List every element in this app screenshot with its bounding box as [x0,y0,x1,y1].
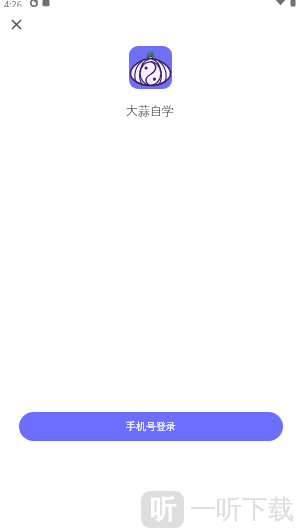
staticText: 听 [150,493,176,526]
staticText: 一听下载 [190,493,294,526]
button[interactable]: Close [2,10,30,38]
staticText: 4:26 [4,0,22,7]
button[interactable]: 手机号登录 [19,412,283,441]
staticText: 大蒜自学 [126,103,174,118]
staticText: 手机号登录 [126,420,176,433]
